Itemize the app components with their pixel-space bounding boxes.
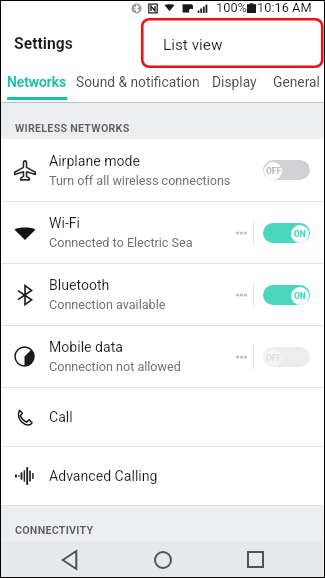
button[interactable]: Off [263,347,310,367]
staticText: Connected to Electric Sea [49,235,193,250]
button[interactable]: More options [227,326,249,387]
button[interactable]: Networks [7,66,67,100]
staticText: Display [212,74,257,90]
button[interactable]: Mobile data [0,326,325,387]
button[interactable]: Recent apps [232,541,278,578]
staticText: Connection available [49,297,166,312]
staticText: General [273,74,320,90]
staticText: Networks [7,74,67,90]
staticText: Bluetooth [49,277,110,294]
button[interactable]: Display [212,66,257,97]
button[interactable]: Home [140,541,186,578]
staticText: Advanced Calling [49,468,158,485]
staticText: Airplane mode [49,153,140,170]
button[interactable]: Wi-Fi [0,202,325,263]
staticText: Turn off all wireless connections [49,173,231,188]
button[interactable]: Call [0,388,325,446]
button[interactable]: More options [227,202,249,263]
staticText: ON [294,291,306,301]
button[interactable]: Bluetooth [0,264,325,325]
staticText: 10:16 AM [257,0,312,15]
staticText: Wi-Fi [49,215,81,232]
button[interactable]: On [263,223,310,243]
staticText: ON [294,229,306,239]
staticText: Settings [14,34,73,52]
button[interactable]: Advanced Calling [0,447,325,505]
staticText: WIRELESS NETWORKS [15,122,130,135]
staticText: Call [49,409,73,426]
staticText: Mobile data [49,339,123,356]
button[interactable]: On [263,285,310,305]
button[interactable]: Sound & notification [76,66,200,97]
staticText: OFF [266,353,281,363]
staticText: List view [163,36,223,54]
button[interactable]: General [273,66,320,97]
staticText: Sound & notification [76,74,200,90]
staticText: 100% [216,0,247,15]
staticText: OFF [266,166,281,176]
button[interactable]: Airplane mode [0,139,325,201]
button[interactable]: Off [263,160,310,180]
staticText: CONNECTIVITY [15,524,94,537]
button[interactable]: Back [47,541,93,578]
staticText: Connection not allowed [49,359,181,374]
button[interactable]: More options [227,264,249,325]
